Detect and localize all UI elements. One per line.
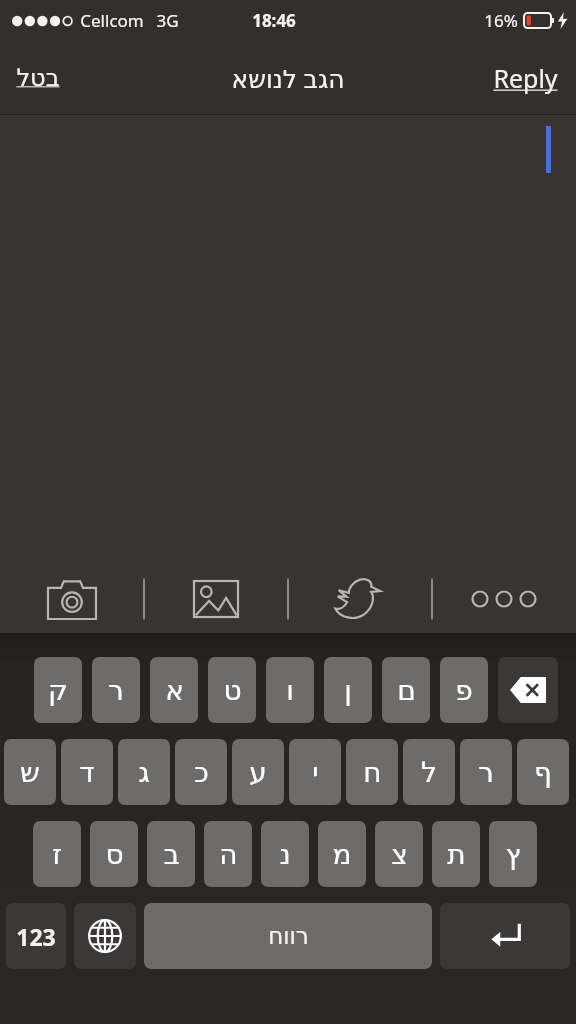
staticText: כ: [194, 756, 209, 789]
staticText: ס: [105, 838, 124, 871]
button[interactable]: ה: [204, 821, 252, 887]
staticText: נ: [279, 838, 291, 871]
staticText: ד: [79, 756, 95, 789]
button[interactable]: Change keyboard language: [74, 903, 136, 969]
button[interactable]: Backspace: [498, 657, 558, 723]
button[interactable]: נ: [261, 821, 309, 887]
button[interactable]: מ: [318, 821, 366, 887]
staticText: ז: [52, 838, 62, 871]
button[interactable]: פ: [440, 657, 488, 723]
staticText: ץ: [505, 838, 521, 871]
button[interactable]: More options: [432, 565, 576, 633]
staticText: Cellcom: [80, 9, 144, 32]
staticText: ר: [478, 756, 494, 789]
button[interactable]: ת: [432, 821, 480, 887]
button[interactable]: ג: [118, 739, 170, 805]
button[interactable]: כ: [175, 739, 227, 805]
button[interactable]: י: [289, 739, 341, 805]
button[interactable]: Camera: [0, 565, 144, 633]
button[interactable]: ל: [403, 739, 455, 805]
button[interactable]: בטל: [6, 56, 70, 100]
staticText: ב: [163, 838, 180, 871]
staticText: ל: [421, 756, 437, 789]
staticText: ם: [397, 674, 416, 707]
button[interactable]: ר: [92, 657, 140, 723]
button[interactable]: Twitter: [288, 565, 432, 633]
staticText: ט: [223, 674, 242, 707]
staticText: 16%: [484, 9, 518, 32]
staticText: ת: [447, 838, 466, 871]
staticText: ח: [363, 756, 382, 789]
button[interactable]: ד: [61, 739, 113, 805]
button[interactable]: ן: [324, 657, 372, 723]
button[interactable]: ב: [147, 821, 195, 887]
button[interactable]: Reply: [483, 53, 568, 103]
button[interactable]: ט: [208, 657, 256, 723]
button[interactable]: ש: [4, 739, 56, 805]
staticText: פ: [455, 674, 473, 707]
button[interactable]: ם: [382, 657, 430, 723]
staticText: בטל: [16, 64, 60, 92]
staticText: 123: [16, 921, 56, 952]
staticText: מ: [332, 838, 352, 871]
staticText: ק: [48, 674, 68, 707]
staticText: Reply: [493, 61, 558, 95]
button[interactable]: ו: [266, 657, 314, 723]
button[interactable]: רווח: [144, 903, 432, 969]
staticText: ף: [534, 756, 552, 789]
staticText: הגב לנושא: [231, 61, 345, 95]
staticText: צ: [391, 838, 408, 871]
button[interactable]: א: [150, 657, 198, 723]
staticText: ן: [344, 674, 352, 707]
staticText: רווח: [268, 923, 309, 950]
staticText: י: [312, 756, 319, 789]
button[interactable]: Return: [440, 903, 570, 969]
button[interactable]: ז: [33, 821, 81, 887]
staticText: 3G: [156, 9, 179, 32]
button[interactable]: ק: [34, 657, 82, 723]
staticText: 18:46: [252, 9, 296, 32]
staticText: א: [165, 674, 184, 707]
staticText: ש: [20, 756, 40, 789]
button[interactable]: 123: [6, 903, 66, 969]
staticText: ה: [219, 838, 238, 871]
staticText: ו: [286, 674, 294, 707]
button[interactable]: ח: [346, 739, 398, 805]
button[interactable]: ר: [460, 739, 512, 805]
button[interactable]: ץ: [489, 821, 537, 887]
staticText: ר: [108, 674, 124, 707]
button[interactable]: ס: [90, 821, 138, 887]
staticText: ג: [138, 756, 150, 789]
button[interactable]: Photo library: [144, 565, 288, 633]
button[interactable]: ף: [517, 739, 569, 805]
button[interactable]: ע: [232, 739, 284, 805]
staticText: ע: [249, 756, 267, 789]
button[interactable]: צ: [375, 821, 423, 887]
